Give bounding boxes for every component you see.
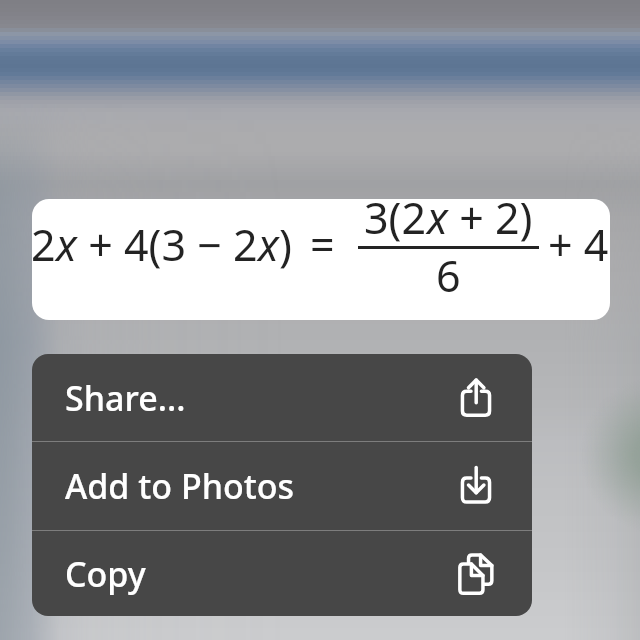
- staticText: x: [427, 199, 448, 247]
- staticText: ): [279, 215, 292, 274]
- staticText: + 4(3 − 2: [77, 215, 258, 274]
- staticText: + 2): [448, 199, 533, 247]
- staticText: x: [258, 215, 279, 274]
- other: Share: [456, 376, 500, 420]
- staticText: 3(2: [364, 199, 427, 247]
- button[interactable]: Add to Photos: [32, 442, 532, 530]
- other: Copy: [456, 552, 500, 596]
- staticText: Share...: [65, 375, 186, 421]
- staticText: 6: [436, 246, 461, 305]
- button[interactable]: 2: [32, 199, 610, 320]
- staticText: x: [56, 215, 77, 274]
- staticText: Add to Photos: [65, 463, 295, 509]
- staticText: Copy: [65, 551, 146, 597]
- other: Add to Photos: [456, 464, 500, 508]
- button[interactable]: Copy: [32, 531, 532, 616]
- staticText: =: [310, 215, 335, 274]
- button[interactable]: Share...: [32, 354, 532, 441]
- staticText: + 4: [548, 215, 609, 274]
- staticText: 2: [32, 215, 56, 274]
